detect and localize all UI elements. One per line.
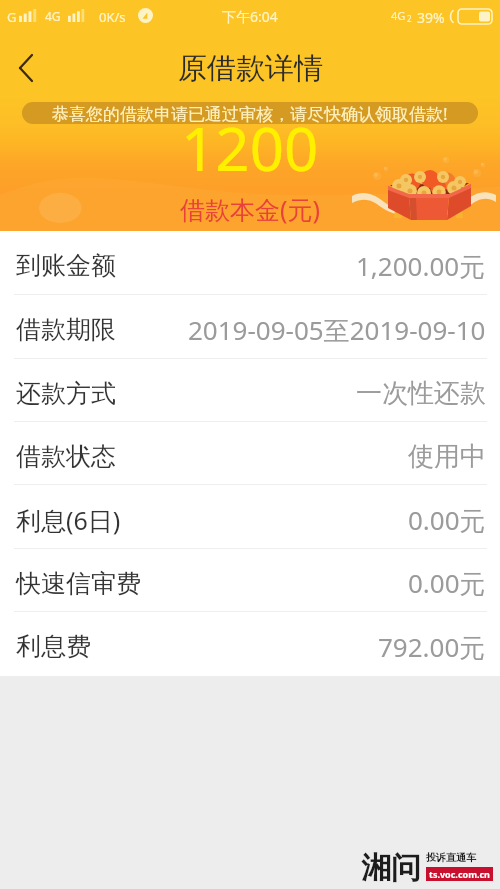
button[interactable]: 借款状态 xyxy=(0,422,500,485)
staticText: 一次性还款 xyxy=(356,377,486,410)
staticText: 4G xyxy=(45,8,61,24)
button[interactable]: 还款方式 xyxy=(0,359,500,422)
staticText: 快速信审费 xyxy=(16,568,141,599)
button[interactable]: 利息费 xyxy=(0,612,500,676)
button[interactable]: 到账金额 xyxy=(0,231,500,295)
button[interactable]: 快速信审费 xyxy=(0,549,500,612)
button[interactable]: 借款期限 xyxy=(0,295,500,359)
staticText: 借款本金(元) xyxy=(180,192,321,226)
staticText: 利息费 xyxy=(16,631,91,662)
staticText: 借款期限 xyxy=(16,314,116,345)
staticText: 到账金额 xyxy=(16,250,116,281)
staticText: 2019-09-05至2019-09-10 xyxy=(188,312,486,348)
staticText: 投诉直通车 xyxy=(426,851,476,864)
staticText: G xyxy=(7,8,17,26)
staticText: 1,200.00元 xyxy=(356,248,486,284)
staticText: 1200 xyxy=(181,107,319,189)
staticText: 原借款详情 xyxy=(178,50,323,87)
staticText: 借款状态 xyxy=(16,441,116,472)
button[interactable]: Back xyxy=(0,43,50,93)
staticText: 恭喜您的借款申请已通过审核，请尽快确认领取借款! xyxy=(52,102,448,124)
staticText: 0.00元 xyxy=(408,502,486,538)
staticText: 下午6:04 xyxy=(222,7,278,26)
staticText: 39% xyxy=(417,8,445,27)
staticText: 792.00元 xyxy=(378,629,486,665)
button[interactable]: 利息(6日) xyxy=(0,485,500,549)
staticText: 利息(6日) xyxy=(16,503,121,537)
staticText: 使用中 xyxy=(408,440,486,473)
staticText: 还款方式 xyxy=(16,378,116,409)
staticText: ts.voc.com.cn xyxy=(429,868,490,880)
staticText: 4G xyxy=(391,8,406,23)
staticText: 湘问 xyxy=(361,849,421,887)
staticText: 0.00元 xyxy=(408,565,486,601)
staticText: 2 xyxy=(407,13,412,24)
staticText: 0K/s xyxy=(99,8,126,26)
